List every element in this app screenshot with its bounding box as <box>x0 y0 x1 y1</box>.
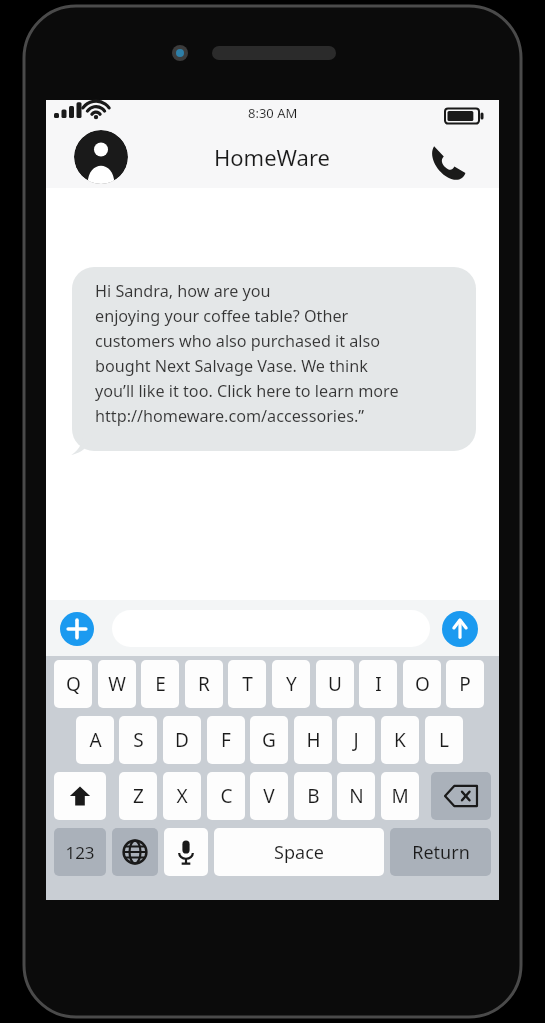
button[interactable]: Space <box>214 828 384 876</box>
button[interactable]: Call <box>424 138 470 184</box>
button[interactable]: V <box>250 772 288 820</box>
staticText: L <box>439 727 449 753</box>
button[interactable]: B <box>294 772 332 820</box>
button[interactable]: Z <box>119 772 157 820</box>
staticText: X <box>176 783 188 809</box>
button[interactable]: F <box>207 716 245 764</box>
staticText: D <box>175 727 189 753</box>
staticText: HomeWare <box>214 142 331 172</box>
staticText: G <box>262 727 276 753</box>
staticText: J <box>353 727 359 753</box>
button[interactable]: K <box>381 716 419 764</box>
staticText: S <box>133 727 144 753</box>
button[interactable]: Q <box>54 660 92 708</box>
button[interactable]: U <box>316 660 354 708</box>
button[interactable]: E <box>141 660 179 708</box>
staticText: T <box>242 671 253 697</box>
staticText: B <box>307 783 320 809</box>
button[interactable]: Return <box>390 828 491 876</box>
staticText: F <box>221 727 231 753</box>
button[interactable]: A <box>76 716 114 764</box>
staticText: Z <box>133 783 144 809</box>
staticText: V <box>263 783 275 809</box>
button[interactable]: C <box>207 772 245 820</box>
staticText: P <box>459 671 471 697</box>
staticText: H <box>306 727 321 753</box>
staticText: W <box>108 671 126 697</box>
button[interactable]: T <box>228 660 266 708</box>
button[interactable]: I <box>359 660 397 708</box>
button[interactable]: H <box>294 716 332 764</box>
button[interactable]: Shift <box>54 772 106 820</box>
button[interactable]: Change keyboard <box>112 828 158 876</box>
button[interactable]: 123 <box>54 828 106 876</box>
button[interactable]: Hi Sandra, how are you enjoying your cof… <box>72 267 476 451</box>
button[interactable]: P <box>446 660 484 708</box>
staticText: N <box>349 783 364 809</box>
button[interactable]: Y <box>272 660 310 708</box>
button[interactable]: R <box>185 660 223 708</box>
staticText: 8:30 AM <box>248 104 298 122</box>
button[interactable]: X <box>163 772 201 820</box>
button[interactable]: Dictate <box>164 828 208 876</box>
staticText: Q <box>66 671 81 697</box>
staticText: 123 <box>65 841 95 864</box>
button[interactable]: Add attachment <box>60 612 94 646</box>
button[interactable]: W <box>98 660 136 708</box>
button[interactable]: M <box>381 772 419 820</box>
staticText: I <box>375 671 382 697</box>
button[interactable]: Send <box>442 611 478 647</box>
staticText: Return <box>412 840 470 865</box>
staticText: E <box>155 671 166 697</box>
button[interactable]: N <box>337 772 375 820</box>
staticText: A <box>89 727 102 753</box>
button[interactable]: L <box>425 716 463 764</box>
button[interactable]: G <box>250 716 288 764</box>
staticText: C <box>220 783 233 809</box>
staticText: O <box>415 671 430 697</box>
staticText: M <box>391 783 409 809</box>
button[interactable]: J <box>337 716 375 764</box>
button[interactable]: D <box>163 716 201 764</box>
staticText: Space <box>274 840 324 865</box>
button[interactable]: Delete <box>431 772 491 820</box>
staticText: R <box>198 671 210 697</box>
staticText: K <box>394 727 406 753</box>
button[interactable]: O <box>403 660 441 708</box>
button[interactable]: S <box>119 716 157 764</box>
button[interactable]: Contact avatar <box>74 130 128 184</box>
staticText: Y <box>286 671 297 697</box>
staticText: Hi Sandra, how are you enjoying your cof… <box>95 280 399 427</box>
staticText: U <box>328 671 342 697</box>
